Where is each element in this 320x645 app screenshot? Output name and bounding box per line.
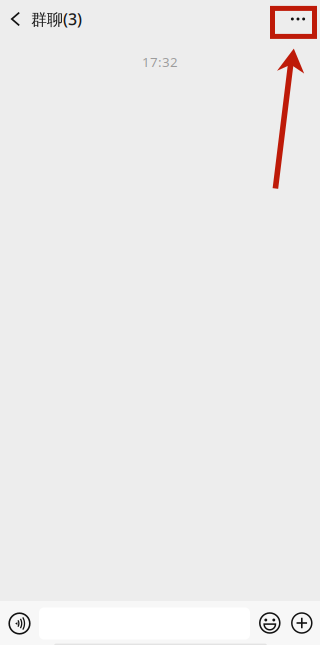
button[interactable]: Voice input	[3, 607, 35, 639]
staticText: 群聊(3)	[31, 8, 82, 30]
button[interactable]: Emoji	[254, 607, 286, 639]
button[interactable]: Back	[0, 0, 31, 38]
staticText: 17:32	[142, 53, 178, 71]
button[interactable]: More options	[286, 607, 318, 639]
button[interactable]: More	[276, 0, 320, 38]
